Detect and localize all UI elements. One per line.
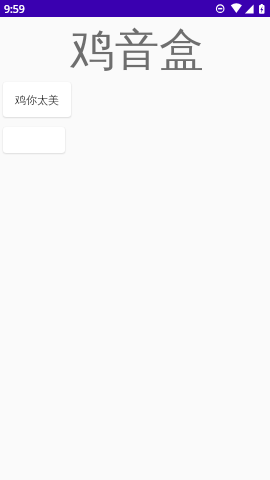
staticText: 9:59 [4, 2, 25, 16]
staticText: 鸡你太美 [15, 93, 59, 107]
button[interactable]: 鸡你太美 [3, 82, 71, 117]
other: System status icons [0, 0, 270, 17]
staticText: 鸡音盒 [70, 22, 204, 78]
